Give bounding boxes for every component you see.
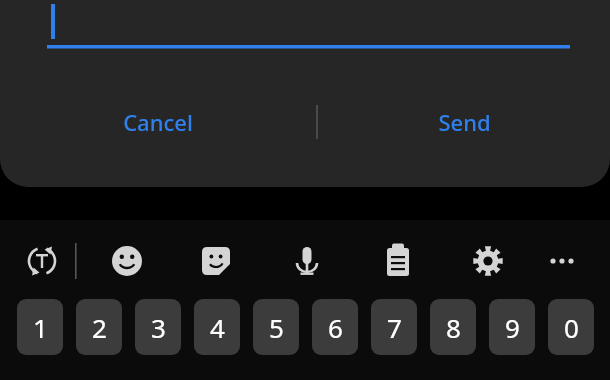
button[interactable]: 9 [489,299,535,355]
button[interactable]: 4 [194,299,240,355]
button[interactable]: 7 [371,299,417,355]
button[interactable]: Translate [18,237,66,285]
button[interactable]: More options [538,237,586,285]
button[interactable]: Stickers [192,237,240,285]
staticText: 7 [387,310,402,345]
button[interactable]: 5 [253,299,299,355]
button[interactable]: Clipboard [374,237,422,285]
staticText: 6 [328,310,343,345]
button[interactable]: Settings [464,237,512,285]
button[interactable]: Emoji [103,237,151,285]
staticText: 8 [446,310,461,345]
staticText: 1 [33,310,48,345]
button[interactable]: 6 [312,299,358,355]
button[interactable]: 2 [76,299,122,355]
button[interactable]: Send [318,98,610,146]
staticText: 3 [151,310,166,345]
button[interactable]: 1 [17,299,63,355]
staticText: 9 [505,310,520,345]
staticText: 4 [210,310,225,345]
button[interactable]: 3 [135,299,181,355]
staticText: 5 [269,310,284,345]
button[interactable]: 0 [548,299,594,355]
staticText: 0 [564,310,579,345]
staticText: Send [438,107,491,137]
button[interactable]: Cancel [0,98,316,146]
staticText: Cancel [123,107,193,137]
button[interactable]: 8 [430,299,476,355]
staticText: 2 [92,310,107,345]
button[interactable]: Voice input [283,237,331,285]
button[interactable] [0,0,610,60]
